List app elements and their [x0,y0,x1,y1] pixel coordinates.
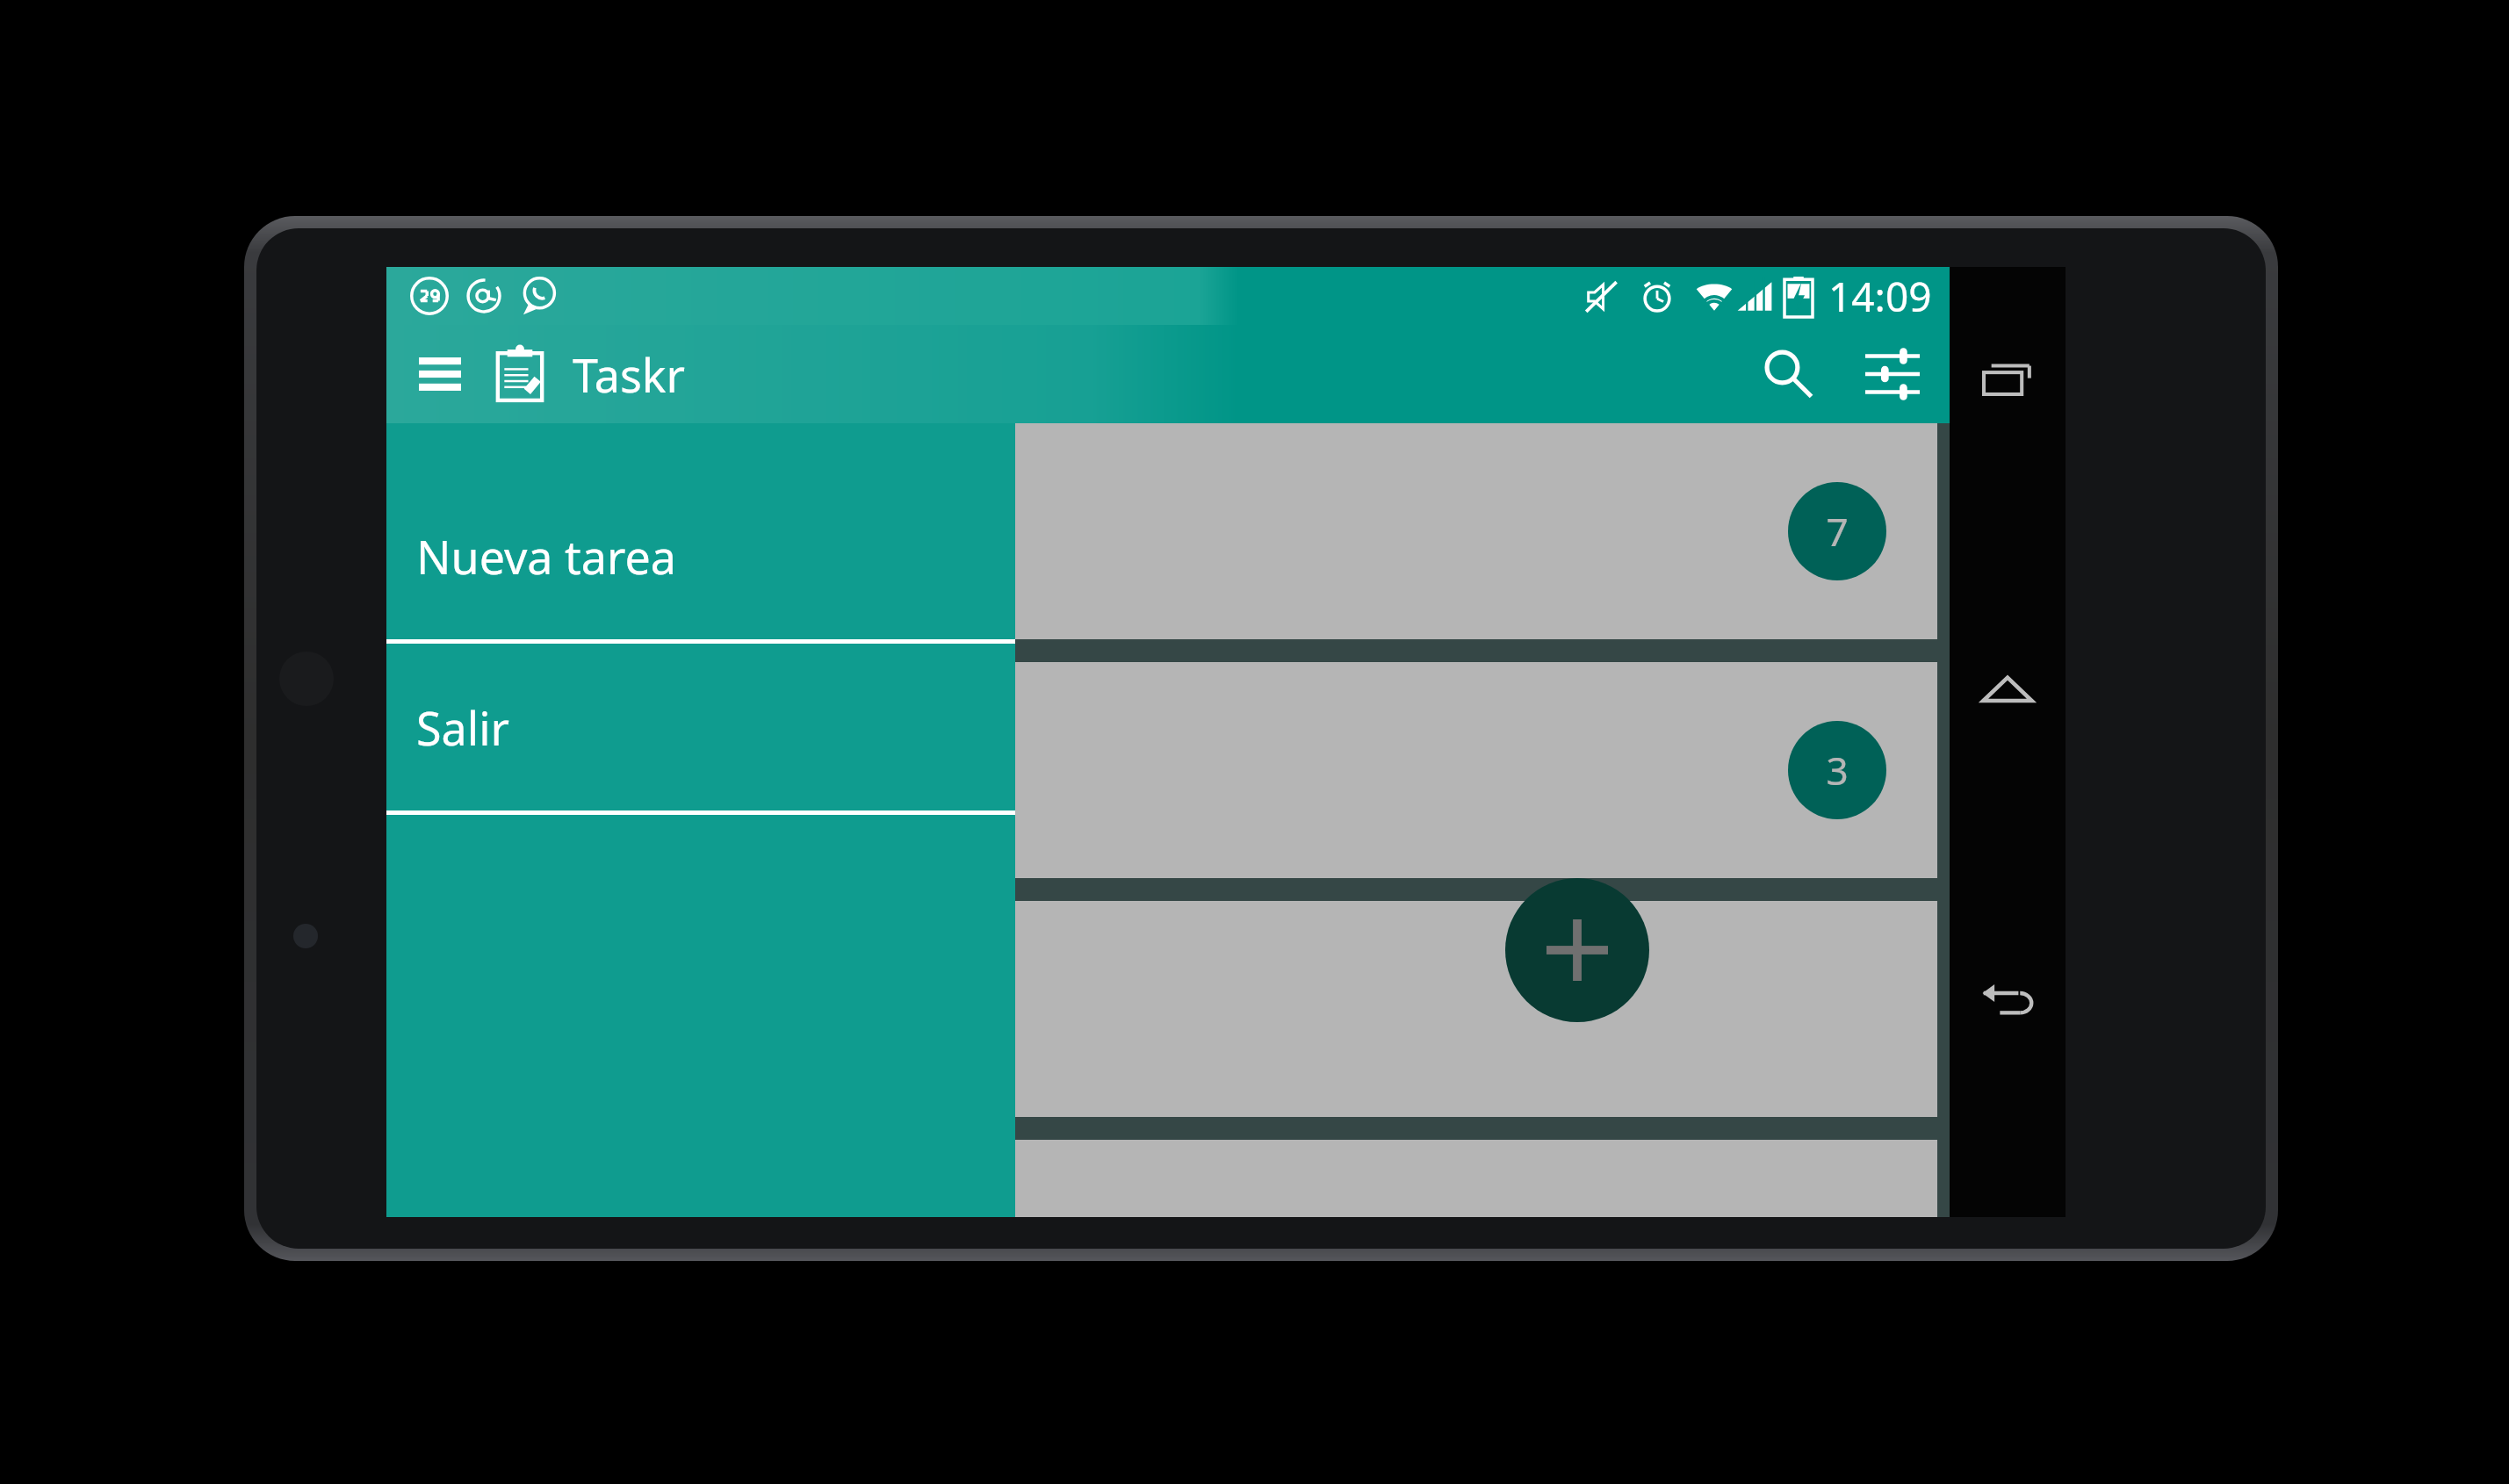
staticText: 3 [1826,744,1849,796]
button[interactable]: Filter settings [1849,331,1936,417]
staticText: Nueva tarea [416,525,676,587]
staticText: Salir [416,696,510,759]
button[interactable]: 7 [395,423,1937,639]
button[interactable]: Salir [386,644,1015,810]
button[interactable] [395,901,1937,1117]
button[interactable]: Recent apps [1950,325,2066,441]
button[interactable]: Home [1950,632,2066,748]
staticText: Taskr [573,343,686,406]
staticText: 7 [1826,505,1849,558]
button[interactable]: Open navigation drawer [406,340,474,408]
button[interactable]: Back [1950,940,2066,1055]
staticText: 14:09 [1828,269,1932,324]
button[interactable]: Add task [1505,878,1649,1022]
button[interactable]: Search [1746,331,1832,417]
button[interactable]: Nueva tarea [386,472,1015,639]
button[interactable] [395,1140,1937,1217]
button[interactable]: 3 [395,662,1937,878]
